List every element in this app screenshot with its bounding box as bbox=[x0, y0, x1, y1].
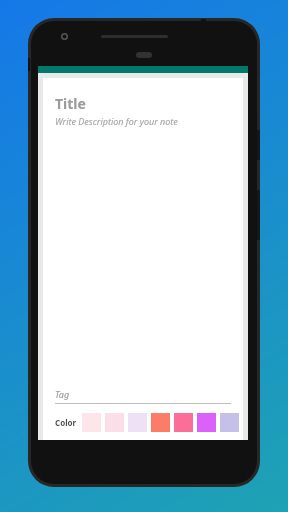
staticText: Tag bbox=[55, 388, 70, 400]
staticText: Color bbox=[55, 417, 77, 428]
button[interactable]: Title bbox=[55, 94, 231, 113]
button[interactable]: Write Description for your note bbox=[55, 115, 231, 388]
staticText: Title bbox=[55, 94, 86, 113]
button[interactable]: Tag bbox=[55, 388, 231, 404]
staticText: Write Description for your note bbox=[55, 115, 178, 127]
